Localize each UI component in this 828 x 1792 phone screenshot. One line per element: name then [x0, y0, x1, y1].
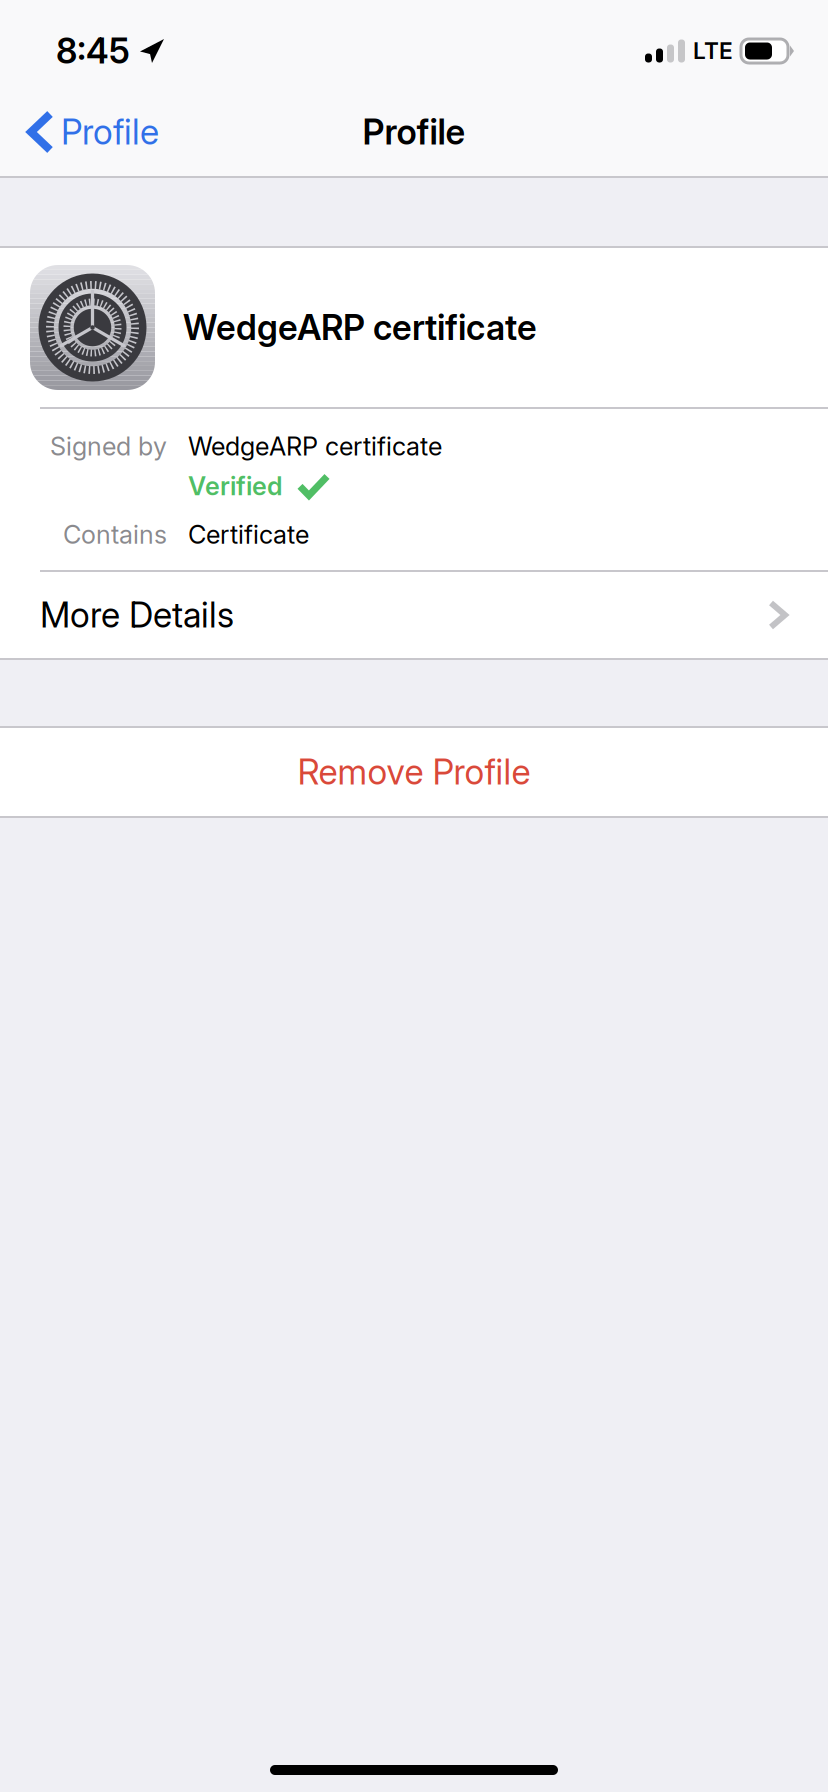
staticText: WedgeARP certificate [183, 306, 537, 348]
staticText: WedgeARP certificate [188, 431, 442, 462]
button[interactable]: Remove Profile [0, 728, 828, 816]
staticText: Remove Profile [297, 751, 530, 793]
staticText: Verified [188, 471, 283, 501]
staticText: More Details [40, 594, 234, 636]
staticText: Profile [362, 111, 465, 153]
staticText: Certificate [188, 519, 309, 550]
button[interactable]: Profile [0, 88, 179, 176]
button[interactable]: More Details [0, 572, 828, 658]
staticText: Profile [61, 111, 159, 153]
staticText: LTE [693, 37, 733, 65]
staticText: Contains [63, 519, 167, 550]
staticText: 8:45 [56, 30, 130, 72]
staticText: Signed by [50, 431, 167, 462]
